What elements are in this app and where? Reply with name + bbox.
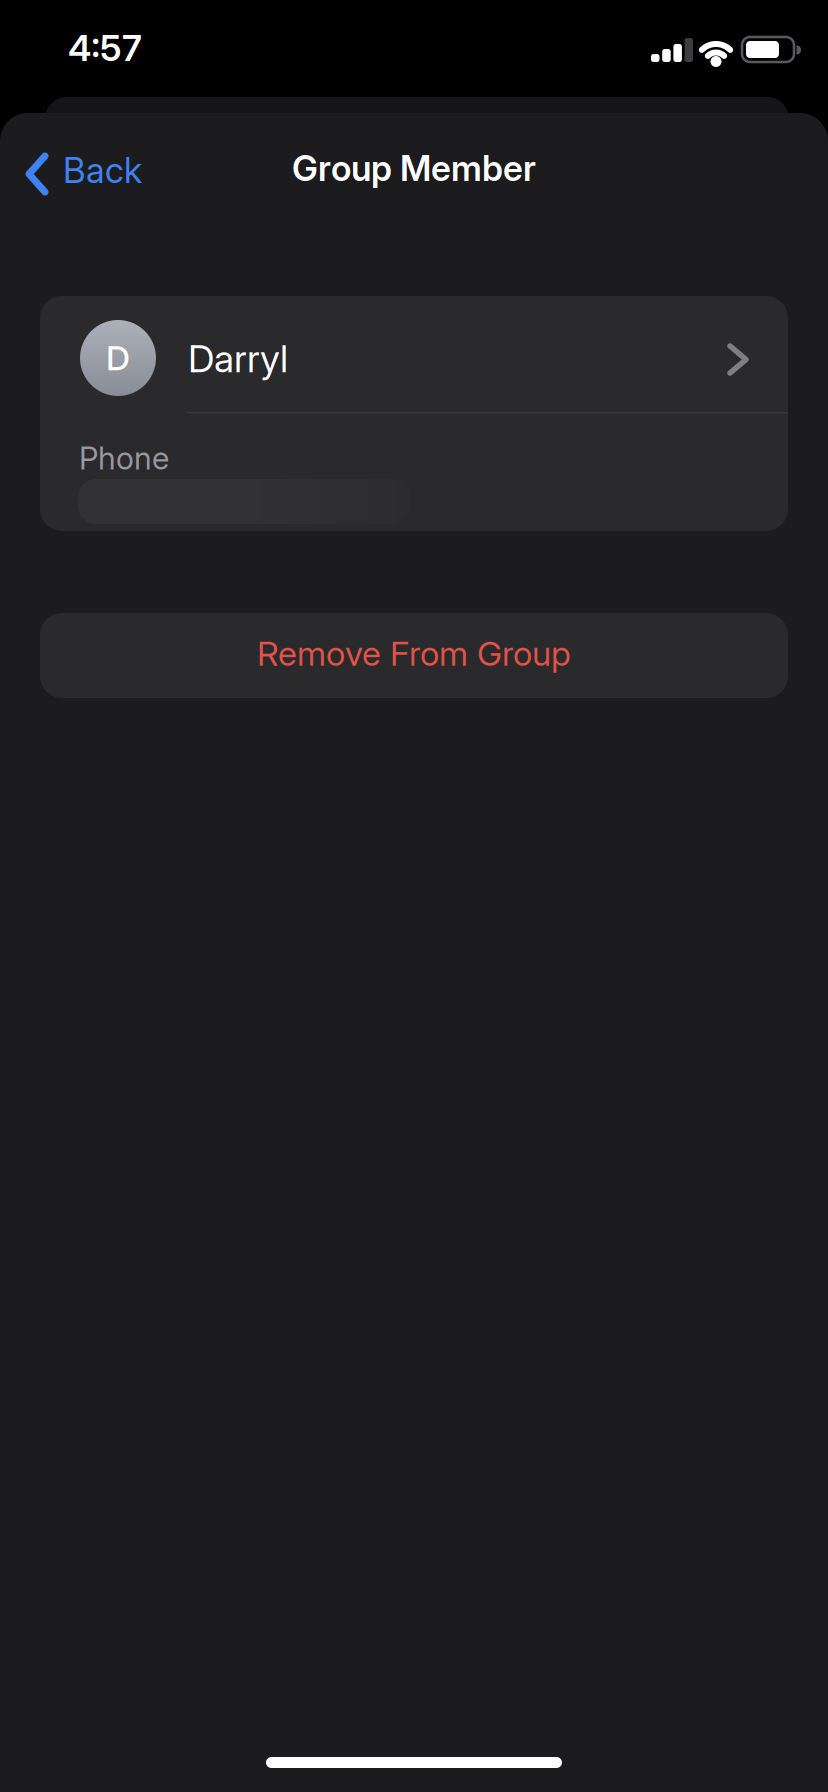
staticText: Group Member (292, 143, 536, 193)
button[interactable]: D (40, 296, 788, 413)
button[interactable]: Remove From Group (40, 613, 788, 698)
staticText: Phone (79, 436, 169, 481)
staticText: Back (63, 145, 142, 195)
staticText: Remove From Group (257, 629, 571, 678)
staticText: 4:57 (68, 22, 142, 74)
staticText: D (106, 333, 130, 382)
button[interactable]: Back (0, 130, 190, 210)
staticText: Darryl (188, 331, 288, 386)
